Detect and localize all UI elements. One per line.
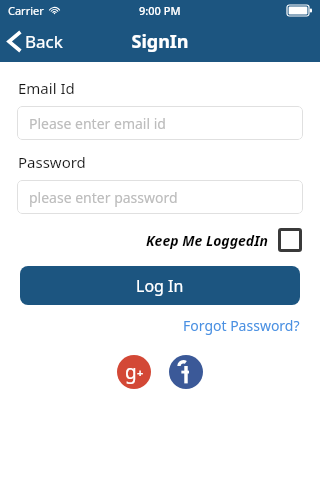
staticText: + — [137, 365, 144, 380]
button[interactable]: Back — [0, 26, 73, 57]
staticText: Back — [25, 30, 63, 53]
button[interactable]: Log In — [20, 266, 300, 305]
button[interactable]: Forgot Password? — [183, 314, 320, 337]
staticText: Log In — [136, 275, 184, 297]
button[interactable]: Keep Me LoggedIn — [146, 226, 302, 254]
staticText: Carrier — [8, 3, 44, 18]
staticText: SignIn — [131, 29, 189, 54]
button[interactable]: Sign in with Google Plus — [117, 355, 151, 389]
staticText: g — [125, 359, 137, 385]
staticText: Email Id — [18, 78, 75, 98]
staticText: 9:00 PM — [139, 3, 181, 18]
button[interactable]: Please enter email id — [17, 106, 303, 140]
button[interactable]: Sign in with Facebook — [169, 355, 203, 389]
staticText: Keep Me LoggedIn — [146, 231, 268, 250]
staticText: Please enter email id — [29, 114, 166, 133]
staticText: Forgot Password? — [183, 316, 300, 335]
staticText: please enter password — [29, 188, 178, 207]
button[interactable]: please enter password — [17, 180, 303, 214]
staticText: Password — [18, 152, 86, 172]
